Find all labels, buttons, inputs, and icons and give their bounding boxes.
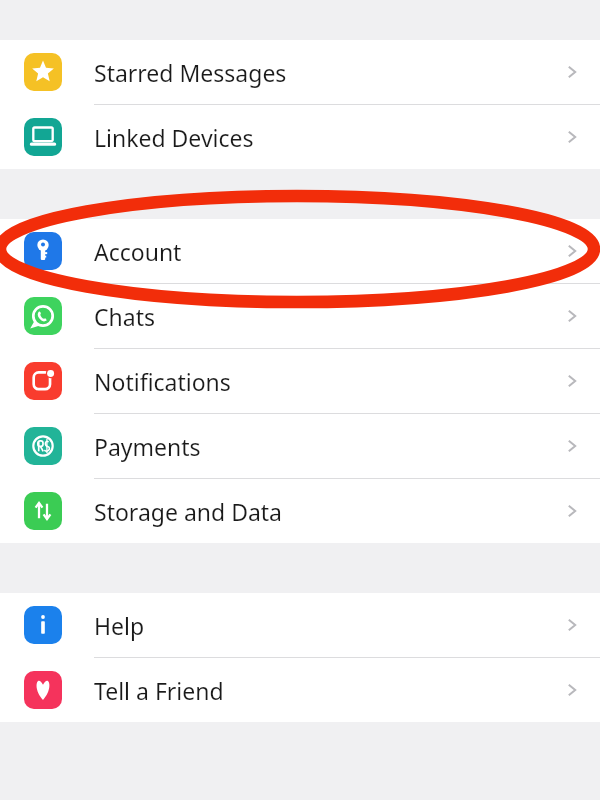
staticText: Starred Messages (94, 57, 287, 88)
button[interactable]: Account (0, 219, 600, 284)
staticText: Tell a Friend (94, 675, 224, 706)
button[interactable]: Notifications (0, 349, 600, 414)
staticText: Account (94, 236, 182, 267)
staticText: Chats (94, 301, 155, 332)
staticText: Help (94, 610, 145, 641)
button[interactable]: Storage and Data (0, 479, 600, 543)
button[interactable]: Starred Messages (0, 40, 600, 105)
button[interactable]: Chats (0, 284, 600, 349)
staticText: Linked Devices (94, 122, 254, 153)
button[interactable]: Tell a Friend (0, 658, 600, 722)
staticText: Payments (94, 431, 201, 462)
button[interactable]: Linked Devices (0, 105, 600, 169)
button[interactable]: Help (0, 593, 600, 658)
staticText: Notifications (94, 366, 231, 397)
button[interactable]: Payments (0, 414, 600, 479)
staticText: Storage and Data (94, 496, 283, 527)
